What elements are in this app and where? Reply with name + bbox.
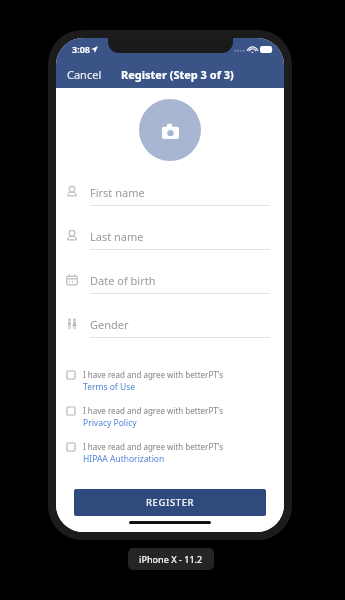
staticText: Cancel [67,67,102,82]
staticText: REGISTER [146,496,195,509]
staticText: I have read and agree with betterPT's [83,441,224,452]
staticText: I have read and agree with betterPT's [83,369,224,380]
staticText: Date of birth [90,273,156,288]
staticText: I have read and agree with betterPT's [83,405,224,416]
button[interactable]: REGISTER [74,489,266,516]
staticText: Gender [90,317,129,332]
button[interactable]: Add profile photo [139,99,201,161]
staticText: Register (Step 3 of 3) [121,67,234,82]
button[interactable]: Terms of Use [83,381,136,393]
button[interactable]: Last name [56,223,284,267]
button[interactable]: Privacy Policy [83,417,137,429]
staticText: First name [90,185,145,200]
staticText: 3:08 [72,43,90,55]
staticText: iPhone X - 11.2 [139,553,203,565]
staticText: Last name [90,229,144,244]
button[interactable]: I have read and agree with betterPT's [56,439,284,467]
button[interactable]: HIPAA Authorization [83,453,165,465]
button[interactable]: First name [56,179,284,223]
button[interactable]: Date of birth [56,267,284,311]
button[interactable]: I have read and agree with betterPT's [56,367,284,395]
button[interactable]: I have read and agree with betterPT's [56,403,284,431]
button[interactable]: Gender [56,311,284,355]
button[interactable]: Cancel [56,63,108,86]
